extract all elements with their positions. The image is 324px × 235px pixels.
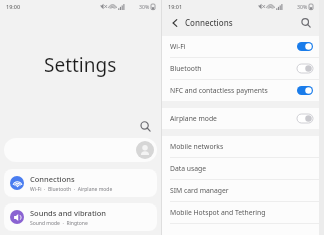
- button[interactable]: Wi-Fi: [162, 36, 319, 57]
- staticText: Bluetooth: [170, 64, 293, 73]
- staticText: 30%: [139, 3, 150, 10]
- staticText: SIM card manager: [170, 186, 229, 195]
- staticText: Data usage: [170, 164, 207, 173]
- staticText: Sound mode · Ringtone: [30, 220, 88, 227]
- staticText: Mobile Hotspot and Tethering: [170, 208, 266, 217]
- staticText: Connections: [185, 17, 233, 28]
- button[interactable]: Mobile networks: [162, 136, 319, 157]
- button[interactable]: SIM card manager: [162, 180, 319, 201]
- button[interactable]: Airplane mode: [162, 108, 319, 129]
- button[interactable]: Account: [4, 138, 157, 162]
- button[interactable]: Search: [136, 117, 154, 135]
- staticText: Wi-Fi · Bluetooth · Airplane mode: [30, 186, 113, 193]
- staticText: Sounds and vibration: [30, 208, 107, 218]
- button[interactable]: Search: [298, 15, 313, 30]
- button[interactable]: Account: [136, 141, 154, 159]
- staticText: Connections: [30, 174, 75, 184]
- button[interactable]: Sounds and vibration: [4, 203, 157, 231]
- staticText: 30%: [297, 3, 308, 10]
- staticText: Settings: [44, 52, 117, 78]
- button[interactable]: Connections: [4, 169, 157, 197]
- staticText: Wi-Fi: [170, 42, 293, 51]
- staticText: 19:01: [168, 3, 183, 10]
- button[interactable]: Data usage: [162, 158, 319, 179]
- staticText: Airplane mode: [170, 114, 293, 123]
- staticText: Mobile networks: [170, 142, 224, 151]
- staticText: 19:00: [6, 3, 21, 10]
- button[interactable]: NFC and contactless payments: [162, 80, 319, 101]
- button[interactable]: Bluetooth: [162, 58, 319, 79]
- button[interactable]: Mobile Hotspot and Tethering: [162, 202, 319, 223]
- button[interactable]: Back: [168, 16, 182, 30]
- staticText: NFC and contactless payments: [170, 86, 293, 95]
